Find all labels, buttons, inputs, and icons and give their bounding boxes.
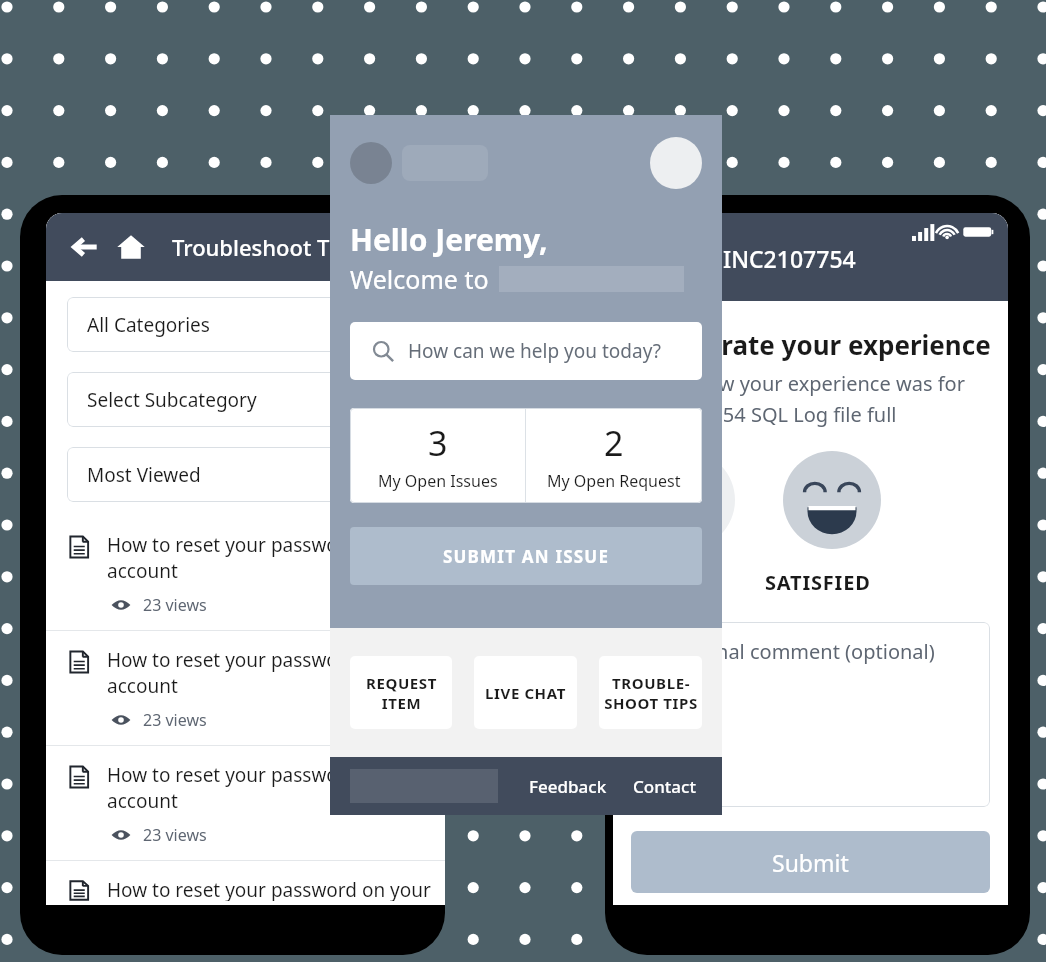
button[interactable]: How can we help you today? — [350, 322, 702, 380]
staticText: How can we help you today? — [408, 338, 661, 364]
staticText: All Categories — [87, 312, 210, 338]
staticText: 3 — [428, 420, 448, 466]
staticText: SATISFIED — [765, 569, 871, 596]
staticText: Additional comment (optional) — [649, 638, 935, 665]
button[interactable]: Home — [114, 230, 148, 264]
staticText: Most Viewed — [87, 462, 201, 488]
staticText: Please rate your experience — [631, 327, 991, 362]
staticText: Hello Jeremy, — [350, 219, 548, 260]
staticText: Contact — [633, 775, 696, 798]
staticText: SUBMIT AN ISSUE — [443, 545, 610, 568]
button[interactable]: Additional comment (optional) — [631, 622, 990, 807]
button[interactable]: 3 — [350, 408, 525, 503]
staticText: 23 views — [143, 824, 207, 846]
staticText: 23 views — [143, 594, 207, 616]
staticText: How to reset your password on your accou… — [107, 762, 433, 814]
staticText: INC2107754 — [723, 243, 856, 274]
staticText: LIVE CHAT — [485, 683, 566, 703]
button[interactable]: How to reset your password on your accou… — [46, 746, 445, 860]
button[interactable]: Contact — [627, 769, 702, 804]
staticText: Select Subcategory — [87, 387, 257, 413]
staticText: Feedback — [529, 775, 607, 798]
staticText: My Open Request — [547, 470, 681, 492]
button[interactable]: LIVE CHAT — [474, 656, 577, 729]
staticText: 2 — [604, 420, 624, 466]
button[interactable]: Satisfied — [781, 449, 883, 551]
button[interactable]: Most Viewed — [67, 447, 424, 502]
staticText: How to reset your password on your accou… — [107, 532, 433, 584]
staticText: How to reset your password on your accou… — [107, 877, 433, 901]
staticText: Submit — [772, 847, 849, 878]
button[interactable]: How to reset your password on your accou… — [46, 631, 445, 745]
button[interactable]: How to reset your password on your accou… — [46, 516, 445, 630]
staticText: Troubleshoot Tips — [172, 232, 360, 262]
button[interactable]: TROUBLE- SHOOT TIPS — [599, 656, 702, 729]
button[interactable]: Select Subcategory — [67, 372, 424, 427]
button[interactable]: Back — [68, 230, 102, 264]
staticText: Tell us how your experience was for INC2… — [631, 370, 965, 427]
button[interactable]: Unsatisfied — [635, 449, 737, 551]
staticText: My Open Issues — [378, 470, 498, 492]
button[interactable]: Profile — [650, 137, 702, 189]
button[interactable]: REQUEST ITEM — [350, 656, 452, 729]
button[interactable]: Feedback — [523, 769, 613, 804]
button[interactable]: SUBMIT AN ISSUE — [350, 527, 702, 585]
button[interactable]: Submit — [631, 831, 990, 893]
staticText: Welcome to — [350, 262, 489, 296]
button[interactable]: How to reset your password on your accou… — [46, 861, 445, 905]
staticText: How to reset your password on your accou… — [107, 647, 433, 699]
button[interactable]: All Categories — [67, 297, 424, 352]
staticText: REQUEST ITEM — [366, 673, 437, 713]
button[interactable]: 2 — [526, 408, 702, 503]
staticText: TROUBLE- SHOOT TIPS — [604, 673, 698, 713]
staticText: 23 views — [143, 709, 207, 731]
